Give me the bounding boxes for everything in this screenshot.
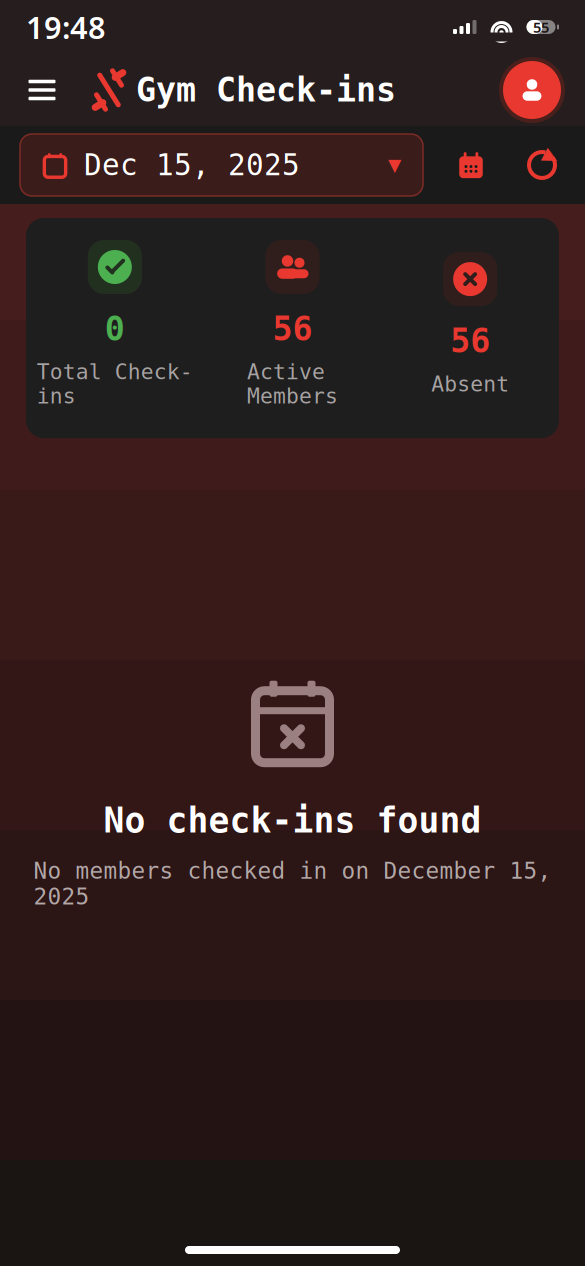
staticText: Absent (431, 372, 509, 396)
staticText: Dec 15, 2025 (84, 148, 300, 182)
staticText: 56 (450, 322, 490, 360)
staticText: 55 (533, 17, 549, 37)
button[interactable]: Menu (14, 66, 70, 114)
button[interactable]: Dec 15, 2025 (20, 134, 423, 196)
staticText: Active Members (247, 360, 338, 408)
staticText: ▶ (544, 145, 558, 167)
staticText: 19:48 (26, 7, 106, 47)
staticText: No check-ins found (103, 801, 481, 840)
staticText: 0 (105, 310, 125, 348)
staticText: 56 (272, 310, 312, 348)
staticText: No members checked in on December 15, 20… (33, 858, 551, 910)
button[interactable]: Open calendar (447, 141, 495, 189)
staticText: ▼ (388, 155, 401, 175)
button[interactable]: Profile (499, 57, 565, 123)
button[interactable]: Refresh (519, 142, 565, 188)
staticText: Gym Check-ins (136, 71, 396, 109)
staticText: Total Check-ins (37, 360, 193, 408)
